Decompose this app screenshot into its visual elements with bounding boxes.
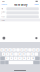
staticText: Title — [1, 8, 3, 10]
button[interactable]: More — [35, 37, 37, 39]
staticText: b — [24, 57, 25, 59]
button[interactable]: r — [12, 48, 16, 52]
staticText: m — [32, 57, 33, 59]
staticText: Author — [1, 11, 5, 15]
button[interactable]: u — [24, 48, 28, 52]
staticText: Notes — [1, 19, 5, 21]
staticText: a — [3, 53, 4, 55]
button[interactable]: j — [26, 52, 30, 56]
button[interactable]: Author — [6, 11, 39, 14]
button[interactable]: e — [8, 48, 12, 52]
button[interactable]: v — [18, 57, 22, 60]
button[interactable]: n — [27, 57, 30, 60]
button[interactable]: x — [9, 57, 13, 60]
button[interactable]: f — [14, 52, 18, 56]
staticText: Cancel — [1, 4, 6, 5]
button[interactable]: Key — [33, 61, 40, 64]
button[interactable]: i — [28, 48, 32, 52]
button[interactable]: d — [10, 52, 14, 56]
staticText: x — [11, 57, 12, 59]
button[interactable]: q — [0, 48, 4, 52]
button[interactable]: g — [18, 52, 22, 56]
staticText: Tags — [1, 16, 5, 18]
button[interactable]: w — [4, 48, 8, 52]
button[interactable]: o — [32, 48, 36, 52]
staticText: 9:41 — [2, 0, 5, 2]
button[interactable]: z — [5, 57, 9, 60]
button[interactable]: Cancel — [1, 4, 6, 5]
button[interactable]: Tags — [6, 15, 39, 18]
button[interactable]: l — [34, 52, 38, 56]
staticText: w — [6, 49, 7, 51]
button[interactable]: Key — [0, 57, 5, 60]
button[interactable]: b — [22, 57, 26, 60]
button[interactable]: m — [31, 57, 35, 60]
button[interactable]: Save — [35, 4, 39, 5]
button[interactable]: t — [16, 48, 20, 52]
staticText: c — [15, 57, 16, 59]
button[interactable]: p — [36, 48, 40, 52]
button[interactable]: Key — [5, 61, 8, 64]
staticText: z — [7, 57, 8, 59]
button[interactable]: Title — [6, 7, 39, 10]
button[interactable]: Key — [35, 57, 40, 60]
staticText: Save — [35, 4, 39, 5]
button[interactable]: c — [14, 57, 18, 60]
button[interactable]: k — [30, 52, 34, 56]
button[interactable]: a — [2, 52, 6, 56]
button[interactable]: y — [20, 48, 24, 52]
button[interactable]: Key — [0, 61, 5, 64]
button[interactable]: h — [22, 52, 26, 56]
staticText: New Entry — [14, 3, 27, 6]
button[interactable]: s — [6, 52, 10, 56]
staticText: n — [28, 57, 29, 59]
